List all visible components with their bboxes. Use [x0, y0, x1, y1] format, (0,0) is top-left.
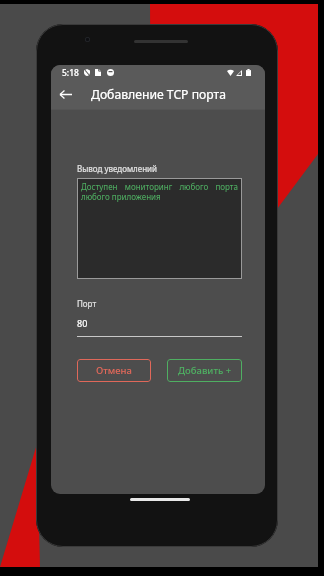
staticText: Порт — [77, 298, 97, 309]
staticText: Вывод уведомлений — [77, 163, 158, 174]
button[interactable]: Добавить + — [167, 359, 242, 382]
staticText: Доступен мониторинг любого порта любого … — [81, 181, 238, 202]
staticText: Добавление TCP порта — [91, 86, 226, 103]
staticText: Добавить + — [178, 364, 232, 377]
button[interactable]: Back — [51, 80, 79, 109]
button[interactable]: Отмена — [77, 359, 151, 382]
staticText: 5:18 — [62, 67, 79, 79]
staticText: 80 — [77, 317, 88, 329]
staticText: Отмена — [96, 364, 132, 377]
